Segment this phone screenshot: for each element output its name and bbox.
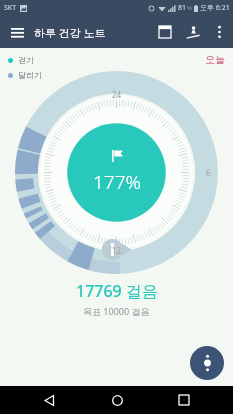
button[interactable]: Back <box>30 386 68 414</box>
button[interactable]: Home <box>98 386 136 414</box>
staticText: 걷기 <box>18 55 34 65</box>
button[interactable]: More options <box>207 20 231 44</box>
staticText: 17769 걸음 <box>76 280 158 302</box>
staticText: SKT <box>4 3 17 13</box>
staticText: 6 <box>206 167 211 178</box>
button[interactable]: Activity map <box>179 18 207 46</box>
staticText: 81 <box>178 3 187 13</box>
staticText: % <box>187 4 192 12</box>
staticText: 목표 10000 걸음 <box>83 305 150 317</box>
button[interactable]: Open navigation menu <box>0 16 34 48</box>
button[interactable]: Recent apps <box>165 386 203 414</box>
staticText: 오후 6:21 <box>200 3 230 13</box>
button[interactable]: More actions <box>190 346 224 380</box>
button[interactable]: 오늘 <box>205 53 225 66</box>
staticText: 177% <box>93 169 141 195</box>
staticText: 달리기 <box>18 70 42 80</box>
staticText: 하루 건강 노트 <box>34 25 106 40</box>
button[interactable]: Calendar <box>151 18 179 46</box>
staticText: 12 <box>112 245 122 256</box>
staticText: 24 <box>112 89 122 100</box>
staticText: 오늘 <box>205 53 225 66</box>
